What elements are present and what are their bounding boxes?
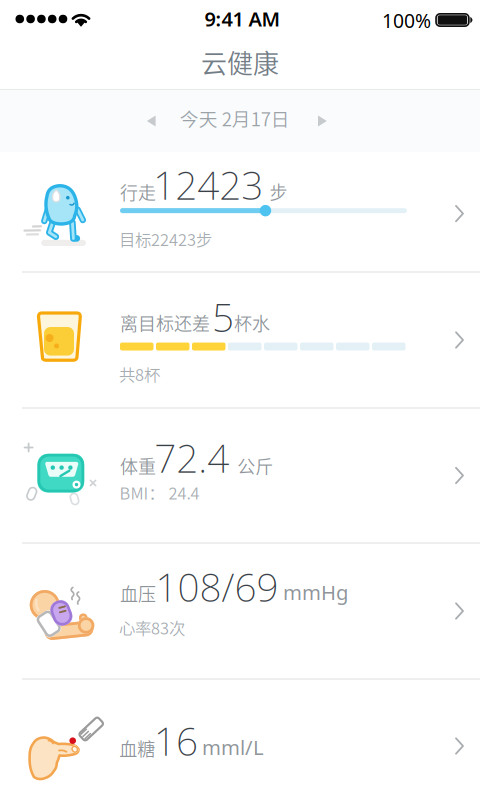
staticText: 5 [212, 291, 234, 343]
button[interactable]: 行走 [0, 152, 480, 271]
staticText: 体重 [120, 452, 156, 479]
staticText: 今天 2月17日 [180, 105, 290, 132]
staticText: 杯水 [234, 309, 270, 336]
staticText: 血压 [120, 580, 156, 606]
button[interactable]: 体重 [0, 409, 480, 542]
staticText: mml/L [202, 733, 264, 761]
staticText: 9:41 AM [204, 5, 280, 32]
staticText: 共8杯 [119, 362, 160, 386]
staticText: 100% [382, 7, 431, 34]
staticText: 目标22423步 [119, 227, 212, 251]
staticText: 心率83次 [119, 615, 185, 639]
button[interactable]: 离目标还差 [0, 273, 480, 407]
staticText: mmHg [283, 578, 348, 606]
staticText: 12423 [153, 158, 263, 211]
staticText: 离目标还差 [120, 309, 210, 336]
staticText: 108/69 [156, 560, 279, 613]
staticText: 云健康 [201, 43, 279, 81]
staticText: 步 [269, 179, 287, 205]
button[interactable]: Previous day [135, 103, 168, 138]
staticText: 16 [154, 714, 198, 767]
button[interactable]: Next day [306, 103, 339, 138]
button[interactable]: 血压 [0, 544, 480, 678]
staticText: 72.4 [154, 431, 229, 484]
staticText: BMI： 24.4 [120, 480, 200, 504]
staticText: 血糖 [119, 735, 155, 761]
staticText: 行走 [120, 179, 156, 205]
staticText: 公斤 [237, 452, 273, 479]
button[interactable]: 血糖 [0, 680, 480, 800]
